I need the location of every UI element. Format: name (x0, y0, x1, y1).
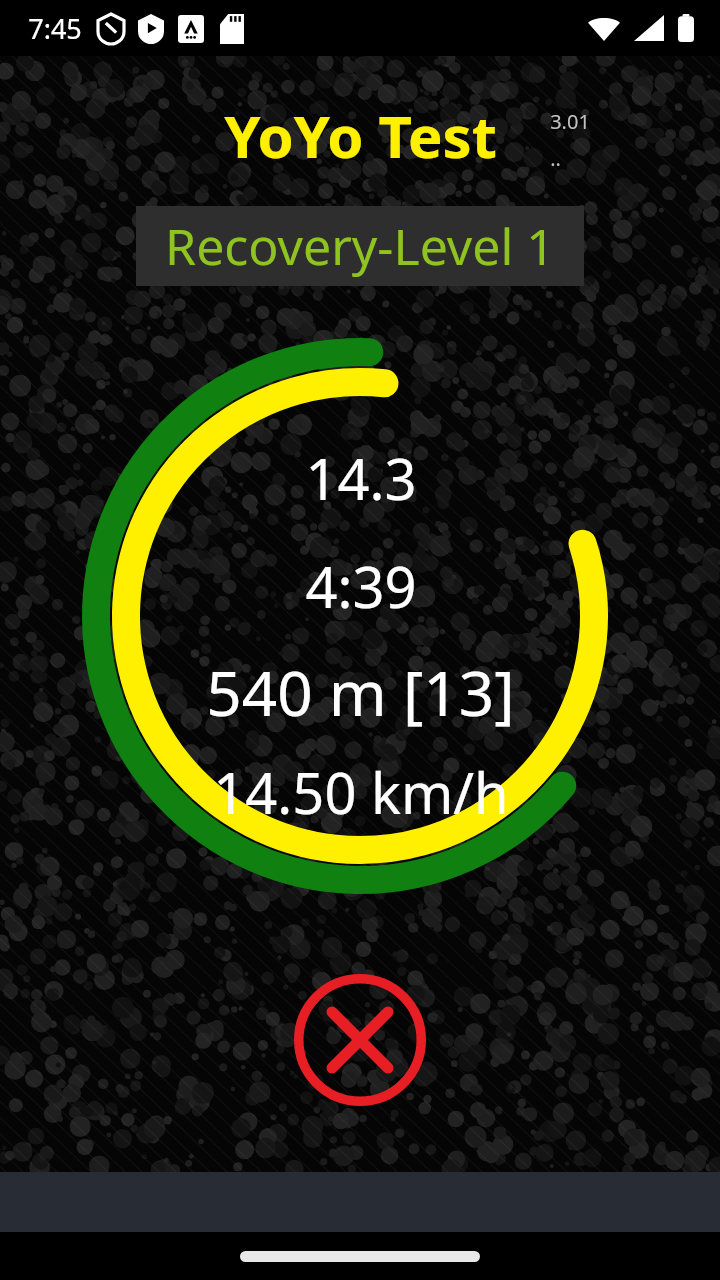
staticText: 3.01 (550, 108, 590, 135)
staticText: YoYo Test (224, 96, 497, 175)
staticText: .. (550, 145, 561, 172)
button[interactable]: Stop test (288, 968, 432, 1112)
staticText: 14.50 km/h (213, 754, 509, 830)
staticText: 14.3 (305, 440, 417, 516)
staticText: Recovery-Level 1 (165, 212, 555, 280)
staticText: 4:39 (305, 548, 417, 624)
staticText: 7:45 (28, 10, 82, 47)
staticText: 540 m [13] (206, 650, 515, 734)
